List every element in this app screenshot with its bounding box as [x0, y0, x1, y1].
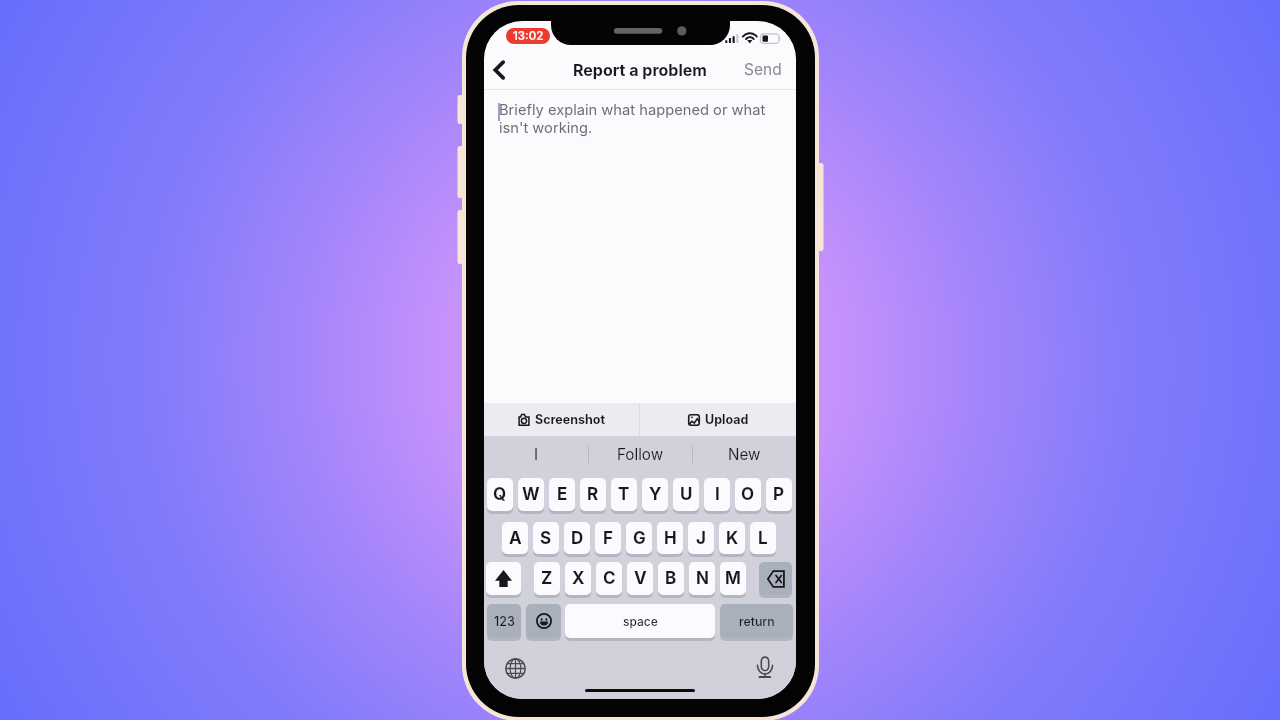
- staticText: space: [623, 614, 658, 629]
- staticText: M: [725, 568, 741, 589]
- button[interactable]: Back: [484, 52, 516, 84]
- staticText: S: [540, 528, 552, 549]
- staticText: G: [633, 528, 646, 549]
- button[interactable]: space: [565, 604, 715, 638]
- button[interactable]: return: [720, 604, 793, 638]
- staticText: Report a problem: [573, 60, 707, 79]
- staticText: V: [634, 568, 647, 589]
- staticText: Screenshot: [535, 412, 606, 427]
- button[interactable]: Y: [642, 478, 668, 511]
- button[interactable]: New: [693, 437, 796, 471]
- staticText: H: [664, 528, 677, 549]
- staticText: Upload: [705, 412, 749, 427]
- staticText: return: [739, 614, 775, 629]
- staticText: E: [557, 484, 568, 505]
- staticText: J: [696, 528, 706, 549]
- staticText: 123: [494, 614, 515, 629]
- button[interactable]: T: [611, 478, 637, 511]
- button[interactable]: Emoji: [526, 604, 561, 638]
- button[interactable]: Screenshot: [484, 403, 639, 436]
- staticText: L: [758, 528, 768, 549]
- staticText: A: [509, 528, 522, 549]
- button[interactable]: I: [704, 478, 730, 511]
- staticText: N: [696, 568, 709, 589]
- button[interactable]: F: [595, 522, 621, 554]
- button[interactable]: E: [549, 478, 575, 511]
- staticText: F: [603, 528, 613, 549]
- staticText: T: [618, 484, 630, 505]
- staticText: I: [534, 445, 539, 463]
- button[interactable]: Backspace: [759, 562, 792, 595]
- button[interactable]: L: [750, 522, 776, 554]
- button[interactable]: Z: [534, 562, 560, 595]
- staticText: O: [741, 484, 755, 505]
- button[interactable]: Shift: [486, 562, 521, 595]
- button[interactable]: N: [689, 562, 715, 595]
- staticText: P: [773, 484, 785, 505]
- staticText: Follow: [617, 445, 664, 463]
- button[interactable]: K: [719, 522, 745, 554]
- button[interactable]: Q: [487, 478, 513, 511]
- button[interactable]: Dictate: [757, 656, 773, 678]
- staticText: New: [728, 445, 761, 463]
- button[interactable]: A: [502, 522, 528, 554]
- staticText: Send: [744, 60, 782, 79]
- staticText: Q: [493, 484, 507, 505]
- button[interactable]: J: [688, 522, 714, 554]
- staticText: K: [726, 528, 739, 549]
- button[interactable]: H: [657, 522, 683, 554]
- staticText: R: [587, 484, 599, 505]
- staticText: W: [522, 484, 540, 505]
- button[interactable]: G: [626, 522, 652, 554]
- button[interactable]: 123: [487, 604, 521, 638]
- button[interactable]: D: [564, 522, 590, 554]
- staticText: D: [571, 528, 584, 549]
- button[interactable]: Send: [733, 56, 796, 83]
- button[interactable]: I: [484, 437, 588, 471]
- button[interactable]: S: [533, 522, 559, 554]
- staticText: 13:02: [513, 29, 544, 43]
- staticText: C: [603, 568, 616, 589]
- staticText: U: [680, 484, 693, 505]
- button[interactable]: B: [658, 562, 684, 595]
- button[interactable]: P: [766, 478, 792, 511]
- button[interactable]: O: [735, 478, 761, 511]
- button[interactable]: Change keyboard: [505, 658, 526, 679]
- staticText: Z: [541, 568, 553, 589]
- button[interactable]: U: [673, 478, 699, 511]
- button[interactable]: W: [518, 478, 544, 511]
- staticText: X: [572, 568, 585, 589]
- button[interactable]: C: [596, 562, 622, 595]
- button[interactable]: M: [720, 562, 746, 595]
- button[interactable]: X: [565, 562, 591, 595]
- staticText: Briefly explain what happened or what is…: [499, 101, 769, 137]
- button[interactable]: Upload: [640, 403, 796, 436]
- button[interactable]: R: [580, 478, 606, 511]
- button[interactable]: V: [627, 562, 653, 595]
- staticText: B: [665, 568, 677, 589]
- staticText: Y: [649, 484, 662, 505]
- button[interactable]: Follow: [589, 437, 692, 471]
- staticText: I: [715, 484, 720, 505]
